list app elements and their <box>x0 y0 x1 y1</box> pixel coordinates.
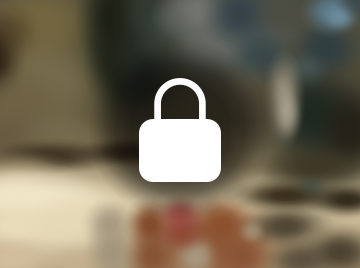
button[interactable]: Locked <box>0 0 360 268</box>
